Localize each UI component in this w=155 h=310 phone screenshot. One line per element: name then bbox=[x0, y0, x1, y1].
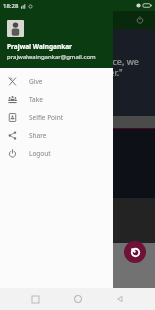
button[interactable]: Logout bbox=[134, 14, 146, 26]
button[interactable]: Give bbox=[0, 72, 113, 90]
button[interactable]: Call bbox=[124, 241, 146, 263]
staticText: prajwalwaingankar@gmail.com bbox=[7, 53, 96, 61]
staticText: "If we can conquer space, we can conquer… bbox=[10, 55, 145, 78]
button[interactable]: Logout bbox=[0, 144, 113, 162]
button[interactable]: Recent apps bbox=[27, 291, 43, 307]
staticText: 18:28 bbox=[3, 2, 19, 10]
staticText: Take bbox=[29, 95, 43, 104]
button[interactable]: Back bbox=[112, 291, 128, 307]
button[interactable]: "If we can conquer space, we can conquer… bbox=[0, 29, 155, 116]
button[interactable]: Prajwal Waingankar bbox=[0, 0, 113, 68]
staticText: Share bbox=[29, 131, 47, 140]
staticText: Logout bbox=[29, 149, 51, 158]
staticText: Give bbox=[29, 77, 43, 86]
staticText: Display bbox=[0, 118, 24, 126]
button[interactable]: Share bbox=[0, 126, 113, 144]
button[interactable]: Selfie Point bbox=[0, 108, 113, 126]
button[interactable]: Home bbox=[70, 291, 86, 307]
button[interactable]: Take bbox=[0, 90, 113, 108]
staticText: Selfie Point bbox=[29, 113, 64, 122]
staticText: Prajwal Waingankar bbox=[7, 42, 73, 51]
